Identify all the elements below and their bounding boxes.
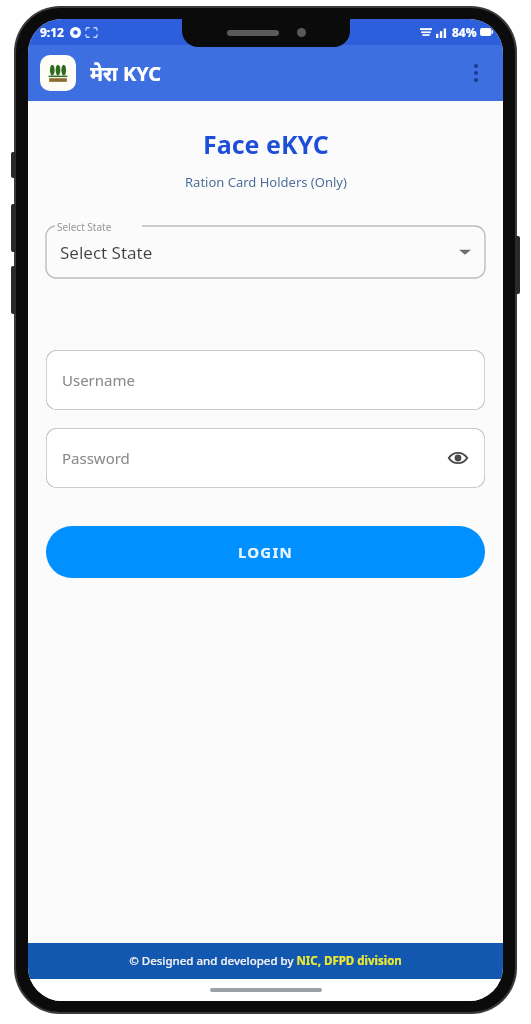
staticText: Password bbox=[62, 448, 130, 468]
button[interactable] bbox=[40, 55, 76, 91]
staticText: LOGIN bbox=[238, 542, 293, 562]
staticText: Ration Card Holders (Only) bbox=[185, 173, 347, 191]
staticText: Select State bbox=[60, 241, 153, 264]
staticText: © Designed and developed by NIC, DFPD di… bbox=[129, 953, 402, 969]
staticText: Username bbox=[62, 370, 135, 390]
button[interactable]: More options bbox=[461, 58, 491, 88]
staticText: Face eKYC bbox=[203, 127, 329, 161]
staticText: Select State bbox=[57, 220, 112, 234]
staticText: 9:12 bbox=[40, 24, 64, 40]
staticText: मेरा KYC bbox=[90, 60, 162, 87]
staticText: 84% bbox=[452, 24, 477, 40]
button[interactable]: Toggle password visibility bbox=[445, 445, 471, 471]
button[interactable]: Select State bbox=[46, 226, 485, 278]
button[interactable]: Password bbox=[46, 428, 485, 488]
button[interactable]: Username bbox=[46, 350, 485, 410]
button[interactable]: LOGIN bbox=[46, 526, 485, 578]
